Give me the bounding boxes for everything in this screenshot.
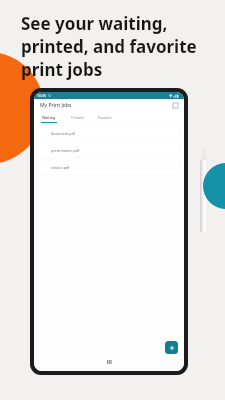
staticText: Printed bbox=[71, 115, 84, 120]
staticText: invoice.pdf bbox=[51, 165, 70, 170]
staticText: My Print Jobs bbox=[40, 102, 72, 109]
staticText: print jobs bbox=[21, 58, 103, 81]
button[interactable]: document.pdf bbox=[40, 127, 178, 139]
button[interactable]: Waiting bbox=[39, 112, 59, 123]
staticText: Waiting bbox=[42, 115, 56, 120]
staticText: document.pdf bbox=[51, 131, 75, 136]
button[interactable]: Options bbox=[172, 102, 179, 109]
button[interactable]: Printed bbox=[67, 112, 87, 123]
staticText: presentation.pdf bbox=[51, 148, 80, 153]
staticText: See your waiting, bbox=[21, 12, 168, 35]
staticText: 10:06 bbox=[37, 93, 46, 98]
button[interactable]: Add print job bbox=[165, 341, 178, 354]
button[interactable]: presentation.pdf bbox=[40, 144, 178, 156]
staticText: printed, and favorite bbox=[21, 35, 197, 58]
staticText: Favorite bbox=[98, 115, 112, 120]
button[interactable]: Favorite bbox=[95, 112, 115, 123]
button[interactable]: invoice.pdf bbox=[40, 161, 178, 173]
button[interactable]: All apps bbox=[103, 358, 115, 366]
